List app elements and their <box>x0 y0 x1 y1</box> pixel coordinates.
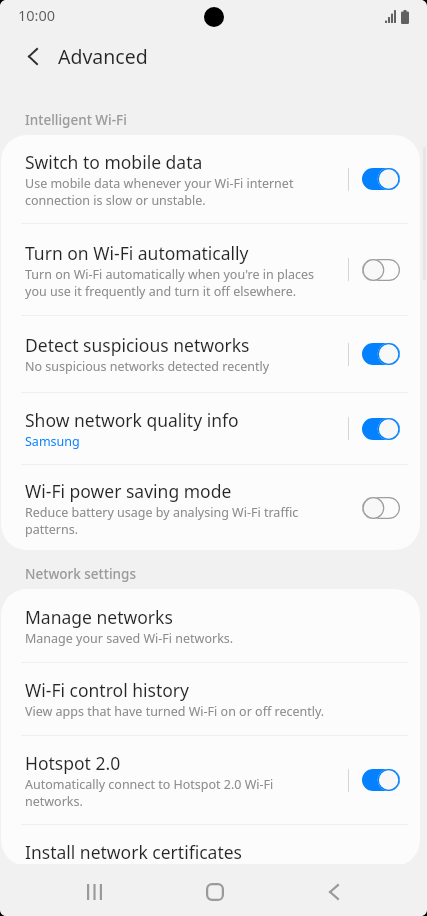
button[interactable]: Toggle <box>358 412 405 446</box>
staticText: Intelligent Wi-Fi <box>25 111 127 129</box>
button[interactable]: Toggle <box>358 162 405 196</box>
staticText: Use mobile data whenever your Wi-Fi inte… <box>25 175 331 208</box>
button[interactable]: Install network certificates <box>1 825 420 866</box>
staticText: 10:00 <box>18 5 56 25</box>
staticText: Show network quality info <box>25 408 239 432</box>
button[interactable]: Wi-Fi power saving mode <box>1 465 420 550</box>
button[interactable]: Wi-Fi control history <box>1 663 420 735</box>
button[interactable]: Hotspot 2.0 <box>1 736 420 824</box>
button[interactable]: Recents <box>60 866 129 916</box>
button[interactable]: Switch to mobile data <box>1 135 420 223</box>
staticText: No suspicious networks detected recently <box>25 358 270 375</box>
staticText: Manage networks <box>25 605 173 629</box>
staticText: Manage your saved Wi-Fi networks. <box>25 630 234 647</box>
staticText: Advanced <box>58 43 148 70</box>
button[interactable]: Toggle <box>358 763 405 797</box>
staticText: Wi-Fi control history <box>25 678 189 702</box>
button[interactable]: Toggle <box>358 491 405 525</box>
button[interactable]: Toggle <box>358 253 405 287</box>
button[interactable]: Manage networks <box>1 589 420 662</box>
staticText: Reduce battery usage by analysing Wi-Fi … <box>25 504 331 537</box>
staticText: Wi-Fi power saving mode <box>25 479 232 503</box>
button[interactable]: Detect suspicious networks <box>1 316 420 392</box>
staticText: Switch to mobile data <box>25 150 203 174</box>
staticText: Turn on Wi-Fi automatically <box>25 241 249 265</box>
staticText: Network settings <box>25 565 136 583</box>
staticText: Samsung <box>25 433 80 450</box>
button[interactable]: Back <box>299 866 368 916</box>
staticText: Hotspot 2.0 <box>25 751 121 775</box>
staticText: Install network certificates <box>25 840 242 864</box>
staticText: Turn on Wi-Fi automatically when you're … <box>25 266 331 299</box>
button[interactable]: Turn on Wi-Fi automatically <box>1 224 420 315</box>
button[interactable]: Home <box>180 866 249 916</box>
staticText: Automatically connect to Hotspot 2.0 Wi-… <box>25 776 331 809</box>
button[interactable]: Show network quality info <box>1 393 420 464</box>
button[interactable]: Toggle <box>358 337 405 371</box>
staticText: Detect suspicious networks <box>25 333 250 357</box>
staticText: View apps that have turned Wi-Fi on or o… <box>25 703 325 720</box>
button[interactable]: Back <box>10 33 56 79</box>
